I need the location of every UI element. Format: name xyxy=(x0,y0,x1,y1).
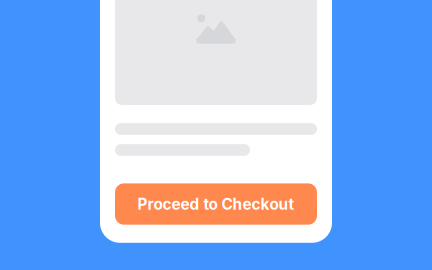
staticText: Proceed to Checkout xyxy=(137,195,294,213)
button[interactable]: Proceed to Checkout xyxy=(115,183,317,225)
